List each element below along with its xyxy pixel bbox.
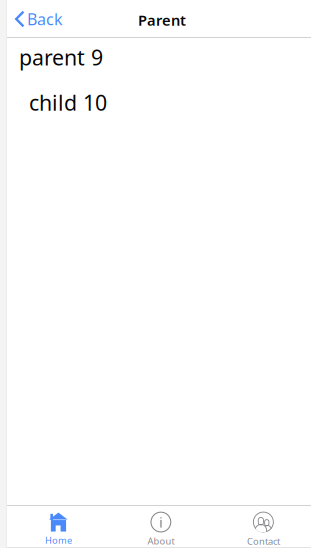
staticText: Back — [27, 8, 63, 30]
staticText: Home — [45, 534, 72, 546]
staticText: Contact — [247, 535, 280, 547]
staticText: parent 9 — [19, 43, 103, 71]
button[interactable]: Contact — [212, 504, 311, 548]
button[interactable]: About — [110, 504, 212, 548]
button[interactable]: Back — [7, 3, 63, 35]
button[interactable]: Home — [7, 505, 110, 547]
staticText: About — [147, 535, 174, 547]
staticText: child 10 — [29, 88, 107, 117]
staticText: Parent — [138, 10, 186, 30]
